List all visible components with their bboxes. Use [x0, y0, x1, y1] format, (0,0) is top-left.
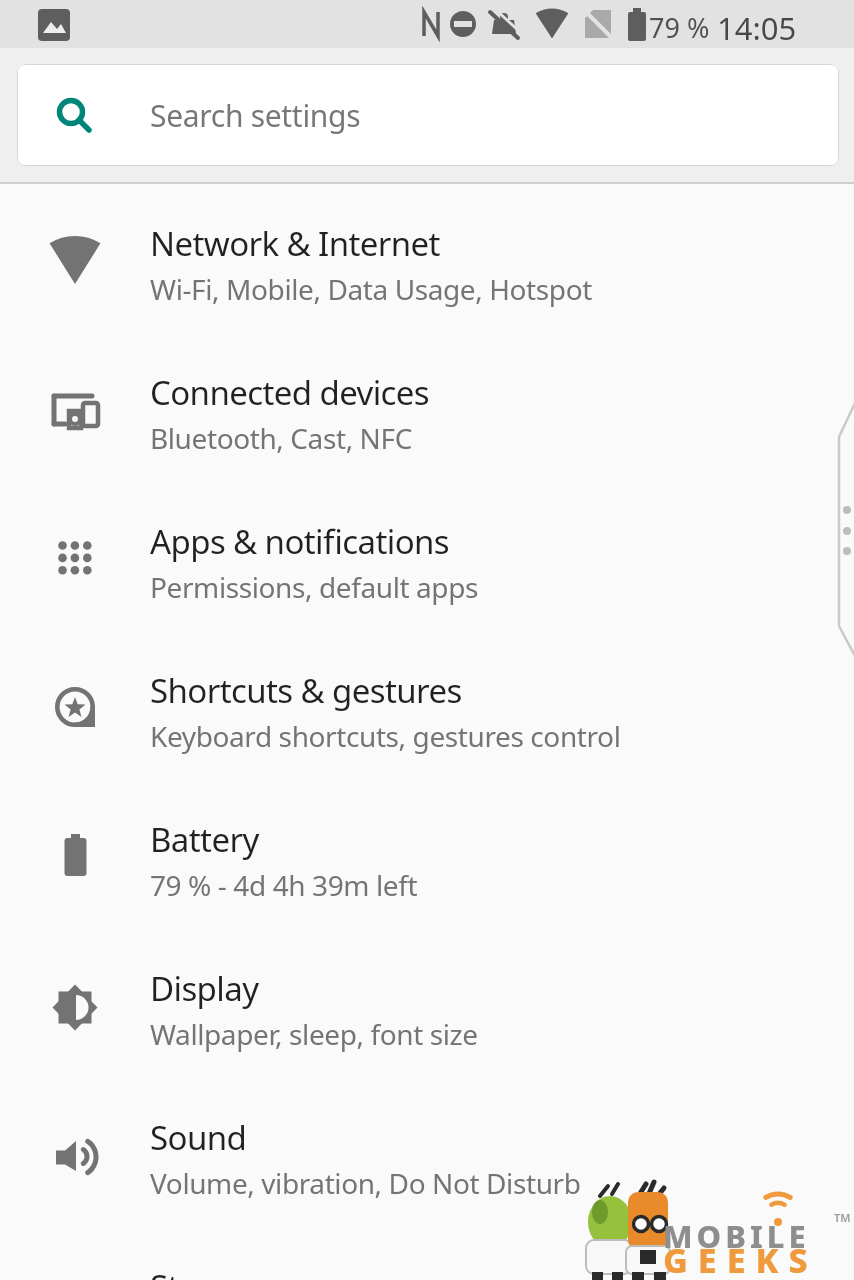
button[interactable]: Apps & notifications [0, 482, 854, 631]
button[interactable]: Storage [0, 1227, 854, 1280]
staticText: Network & Internet [150, 221, 440, 266]
staticText: Display [150, 966, 259, 1011]
button[interactable]: Display [0, 929, 854, 1078]
staticText: Shortcuts & gestures [150, 668, 462, 713]
staticText: 14:05 [717, 7, 797, 49]
staticText: MOBILE [663, 1215, 810, 1257]
staticText: GEEKS [663, 1237, 818, 1280]
staticText: 79 % [649, 9, 710, 46]
staticText: TM [834, 1210, 851, 1225]
staticText: Connected devices [150, 370, 430, 415]
staticText: Keyboard shortcuts, gestures control [150, 717, 621, 755]
button[interactable]: Battery [0, 780, 854, 929]
staticText: 79 % - 4d 4h 39m left [150, 866, 418, 904]
button[interactable]: Connected devices [0, 333, 854, 482]
staticText: Wi-Fi, Mobile, Data Usage, Hotspot [150, 270, 592, 308]
button[interactable]: Network & Internet [0, 184, 854, 333]
staticText: Permissions, default apps [150, 568, 479, 606]
staticText: Bluetooth, Cast, NFC [150, 419, 412, 457]
staticText: Search settings [150, 95, 361, 136]
staticText: Storage [150, 1264, 267, 1280]
staticText: Sound [150, 1115, 247, 1160]
staticText: Volume, vibration, Do Not Disturb [150, 1164, 581, 1202]
staticText: Apps & notifications [150, 519, 449, 564]
button[interactable]: Sound [0, 1078, 854, 1227]
button[interactable]: Search settings [17, 64, 839, 166]
button[interactable]: Shortcuts & gestures [0, 631, 854, 780]
staticText: Wallpaper, sleep, font size [150, 1015, 478, 1053]
staticText: Battery [150, 817, 259, 862]
